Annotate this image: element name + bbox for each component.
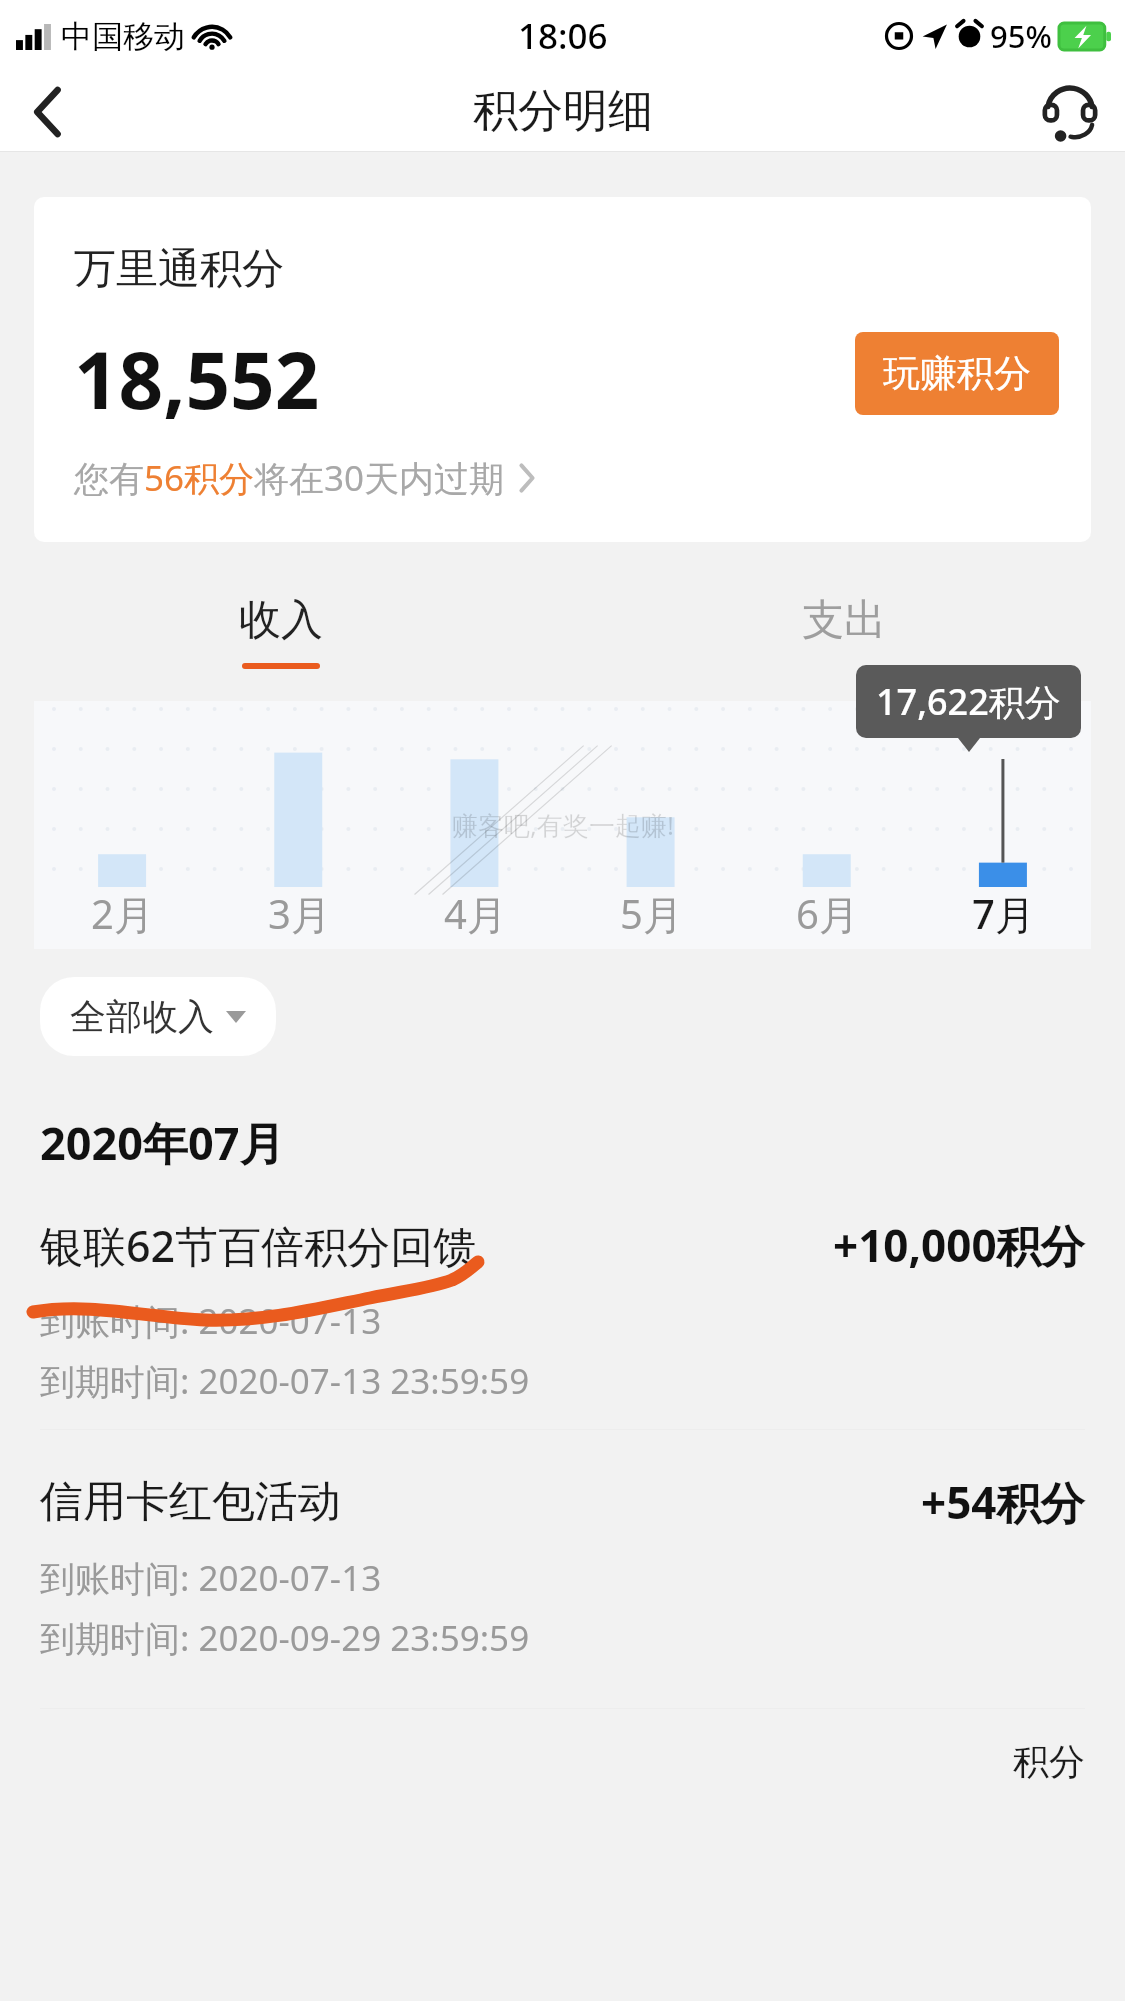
staticText: 玩赚积分: [883, 350, 1031, 397]
staticText: 全部收入: [70, 994, 214, 1039]
staticText: 收入: [239, 594, 323, 647]
staticText: 到账时间: 2020-07-13: [40, 1297, 382, 1345]
button[interactable]: 支出: [562, 594, 1125, 669]
staticText: 到期时间: 2020-09-29 23:59:59: [40, 1614, 530, 1662]
staticText: 您有56积分将在30天内过期: [74, 454, 505, 502]
button[interactable]: Customer service: [1015, 72, 1125, 151]
button[interactable]: 玩赚积分: [855, 332, 1059, 415]
staticText: 支出: [802, 594, 886, 647]
staticText: 4月: [444, 886, 507, 941]
button[interactable]: 信用卡红包活动: [0, 1472, 1125, 1662]
button[interactable]: 银联62节百倍积分回馈: [0, 1215, 1125, 1405]
staticText: 18:06: [518, 12, 608, 60]
staticText: 18,552: [74, 326, 320, 432]
staticText: +10,000积分: [833, 1215, 1085, 1275]
staticText: 积分明细: [473, 83, 653, 140]
staticText: +54积分: [921, 1472, 1085, 1532]
staticText: 2月: [91, 886, 154, 941]
staticText: 95%: [990, 15, 1052, 57]
button[interactable]: 万里通积分: [34, 197, 1091, 542]
staticText: 中国移动: [61, 17, 185, 56]
button[interactable]: 收入: [0, 594, 562, 669]
staticText: 到期时间: 2020-07-13 23:59:59: [40, 1357, 530, 1405]
staticText: 3月: [268, 886, 331, 941]
staticText: 7月: [972, 886, 1035, 941]
staticText: 积分: [1013, 1739, 1085, 1784]
button[interactable]: 全部收入: [40, 977, 276, 1056]
staticText: 银联62节百倍积分回馈: [40, 1216, 477, 1275]
staticText: 2020年07月: [40, 1112, 285, 1173]
staticText: 5月: [620, 886, 683, 941]
staticText: 17,622积分: [876, 677, 1061, 726]
staticText: 万里通积分: [74, 243, 284, 296]
staticText: 信用卡红包活动: [40, 1475, 341, 1529]
staticText: 6月: [796, 886, 859, 941]
staticText: 赚客吧,有奖一起赚!: [452, 807, 674, 843]
button[interactable]: Back: [0, 72, 96, 151]
staticText: 到账时间: 2020-07-13: [40, 1554, 382, 1602]
